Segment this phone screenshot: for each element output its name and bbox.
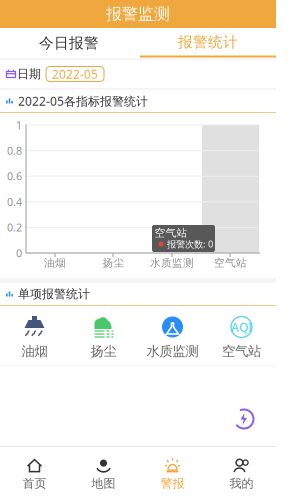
staticText: 警报	[160, 476, 184, 491]
button[interactable]: 水质监测	[138, 310, 207, 365]
staticText: 1	[16, 118, 22, 132]
button[interactable]: 刷新	[233, 408, 255, 430]
staticText: 空气站	[154, 226, 187, 239]
button[interactable]: 扬尘	[69, 310, 138, 365]
staticText: 水质监测	[146, 343, 198, 359]
staticText: 0.4	[7, 195, 22, 209]
staticText: 今日报警	[39, 34, 99, 52]
staticText: 水质监测	[150, 256, 194, 269]
button[interactable]: 警报	[138, 453, 207, 496]
staticText: 0.6	[7, 169, 22, 183]
staticText: 我的	[229, 476, 253, 491]
button[interactable]: 首页	[0, 453, 69, 496]
staticText: 首页	[22, 476, 46, 491]
staticText: 0.2	[7, 220, 22, 234]
staticText: 2022-05	[52, 66, 98, 82]
staticText: 报警次数: 0	[167, 238, 213, 250]
staticText: AQI	[231, 319, 252, 335]
button[interactable]: 油烟	[0, 310, 69, 365]
staticText: 单项报警统计	[18, 287, 90, 301]
staticText: 日期	[17, 67, 41, 81]
staticText: 扬尘	[102, 256, 124, 269]
button[interactable]: 2022-05	[46, 66, 104, 81]
staticText: 报警统计	[178, 33, 238, 51]
button[interactable]: 报警统计	[139, 28, 277, 57]
button[interactable]: 今日报警	[0, 29, 138, 57]
staticText: 0.8	[7, 143, 22, 158]
button[interactable]: AQI	[207, 310, 276, 365]
staticText: 0	[16, 246, 22, 260]
staticText: 空气站	[222, 343, 261, 359]
button[interactable]: 地图	[69, 453, 138, 496]
button[interactable]: 我的	[207, 453, 276, 496]
staticText: 扬尘	[90, 343, 116, 359]
staticText: 报警监测	[106, 4, 170, 24]
staticText: 地图	[91, 476, 115, 491]
staticText: 油烟	[44, 256, 66, 269]
staticText: 2022-05各指标报警统计	[18, 93, 148, 109]
staticText: 空气站	[214, 256, 247, 269]
staticText: 油烟	[21, 343, 47, 359]
